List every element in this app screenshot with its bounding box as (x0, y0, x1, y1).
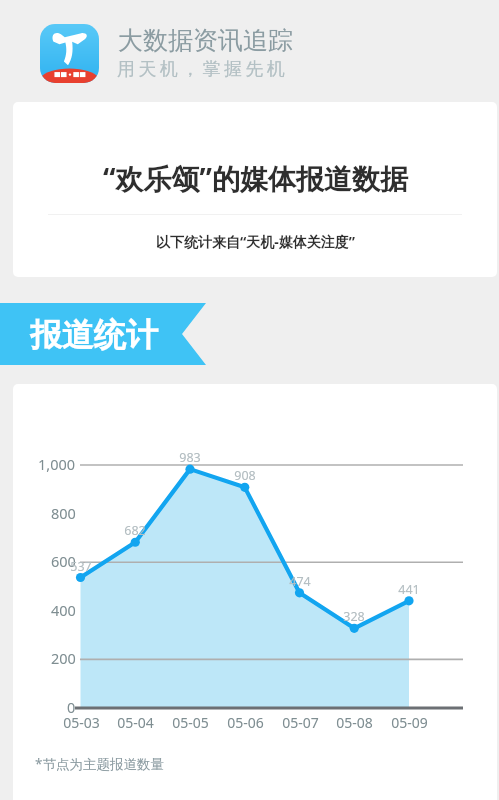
staticText: 05-03 (63, 713, 100, 732)
staticText: 用天机，掌握先机 (117, 58, 289, 81)
other: 天机追踪 app logo (40, 24, 99, 83)
staticText: 05-04 (117, 713, 154, 732)
staticText: 报道统计 (30, 315, 158, 355)
staticText: 以下统计来自“天机-媒体关注度” (156, 232, 355, 251)
staticText: 328 (343, 608, 365, 625)
staticText: “欢乐颂”的媒体报道数据 (103, 159, 408, 197)
staticText: 05-06 (227, 713, 264, 732)
staticText: 908 (234, 467, 256, 484)
button[interactable]: 报道统计 (0, 303, 499, 365)
staticText: 400 (51, 600, 76, 620)
staticText: 05-05 (172, 713, 209, 732)
button[interactable]: 天机追踪 app logo (0, 0, 499, 101)
staticText: 474 (289, 573, 311, 590)
staticText: 05-08 (336, 713, 373, 732)
staticText: 大数据资讯追踪 (118, 25, 293, 56)
staticText: *节点为主题报道数量 (35, 755, 164, 773)
staticText: 682 (124, 522, 146, 539)
staticText: 05-07 (282, 713, 319, 732)
staticText: 0 (67, 697, 76, 717)
staticText: 441 (398, 581, 420, 598)
staticText: 1,000 (38, 454, 76, 474)
staticText: 800 (51, 503, 76, 523)
staticText: 600 (51, 551, 76, 571)
staticText: 200 (51, 648, 76, 668)
staticText: 05-09 (391, 713, 428, 732)
staticText: 537 (70, 558, 92, 575)
staticText: 983 (179, 449, 201, 466)
